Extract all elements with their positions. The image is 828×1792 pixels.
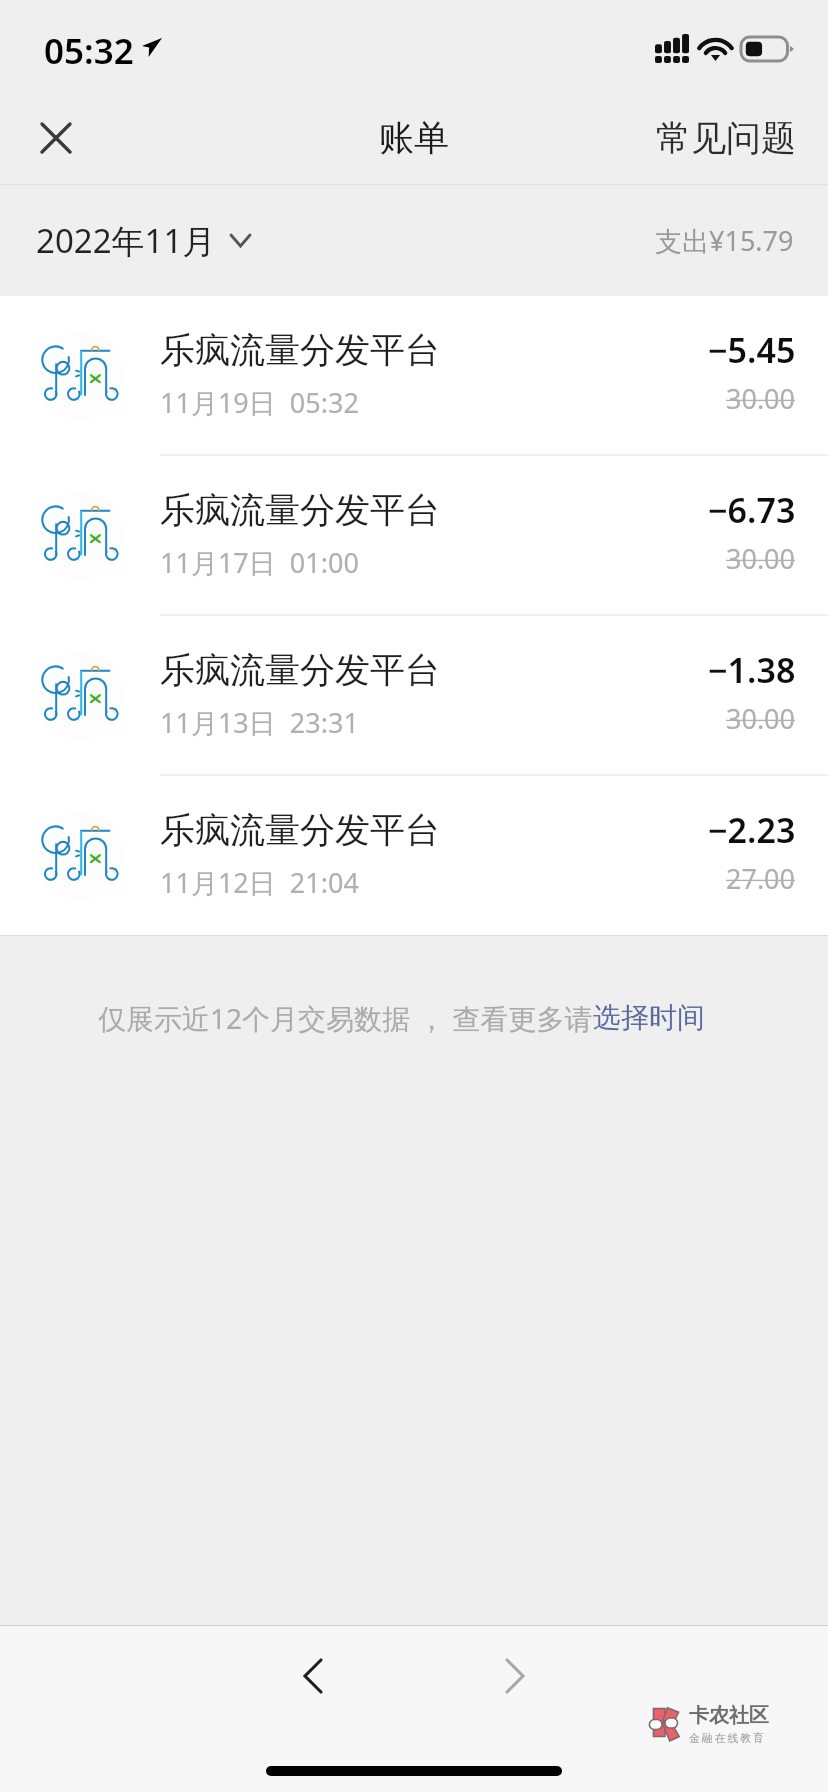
staticText: 30.00 bbox=[726, 700, 796, 737]
staticText: 乐疯流量分发平台 bbox=[160, 808, 440, 852]
button[interactable]: 乐疯流量分发平台 bbox=[0, 616, 828, 776]
button[interactable]: 常见问题 bbox=[632, 92, 828, 184]
staticText: −2.23 bbox=[708, 807, 796, 853]
staticText: 仅展示近12个月交易数据 ， 查看更多请 bbox=[98, 999, 593, 1037]
staticText: 27.00 bbox=[726, 860, 796, 897]
staticText: −5.45 bbox=[708, 327, 796, 373]
staticText: 乐疯流量分发平台 bbox=[160, 648, 440, 692]
staticText: 11月12日 21:04 bbox=[160, 864, 359, 901]
button[interactable]: Close bbox=[0, 92, 112, 184]
staticText: 11月19日 05:32 bbox=[160, 384, 359, 421]
staticText: 账单 bbox=[379, 116, 449, 160]
button[interactable]: 选择时间 bbox=[593, 994, 705, 1041]
staticText: 选择时间 bbox=[593, 1000, 705, 1035]
staticText: 11月17日 01:00 bbox=[160, 544, 359, 581]
staticText: 30.00 bbox=[726, 540, 796, 577]
button[interactable]: 乐疯流量分发平台 bbox=[0, 776, 828, 936]
staticText: 乐疯流量分发平台 bbox=[160, 328, 440, 372]
staticText: 卡农社区 bbox=[689, 1703, 769, 1728]
staticText: 乐疯流量分发平台 bbox=[160, 488, 440, 532]
button[interactable]: Forward bbox=[474, 1635, 556, 1717]
button[interactable]: 乐疯流量分发平台 bbox=[0, 296, 828, 456]
staticText: 2022年11月 bbox=[36, 218, 216, 263]
staticText: 金融在线教育 bbox=[689, 1731, 766, 1745]
staticText: 11月13日 23:31 bbox=[160, 704, 359, 741]
staticText: 05:32 bbox=[44, 27, 134, 75]
button[interactable]: 2022年11月 bbox=[0, 185, 274, 296]
staticText: −1.38 bbox=[708, 647, 796, 693]
button[interactable]: 乐疯流量分发平台 bbox=[0, 456, 828, 616]
staticText: 常见问题 bbox=[656, 116, 796, 160]
button[interactable]: Back bbox=[272, 1635, 354, 1717]
staticText: 30.00 bbox=[726, 380, 796, 417]
staticText: −6.73 bbox=[708, 487, 796, 533]
staticText: 支出¥15.79 bbox=[655, 222, 794, 259]
